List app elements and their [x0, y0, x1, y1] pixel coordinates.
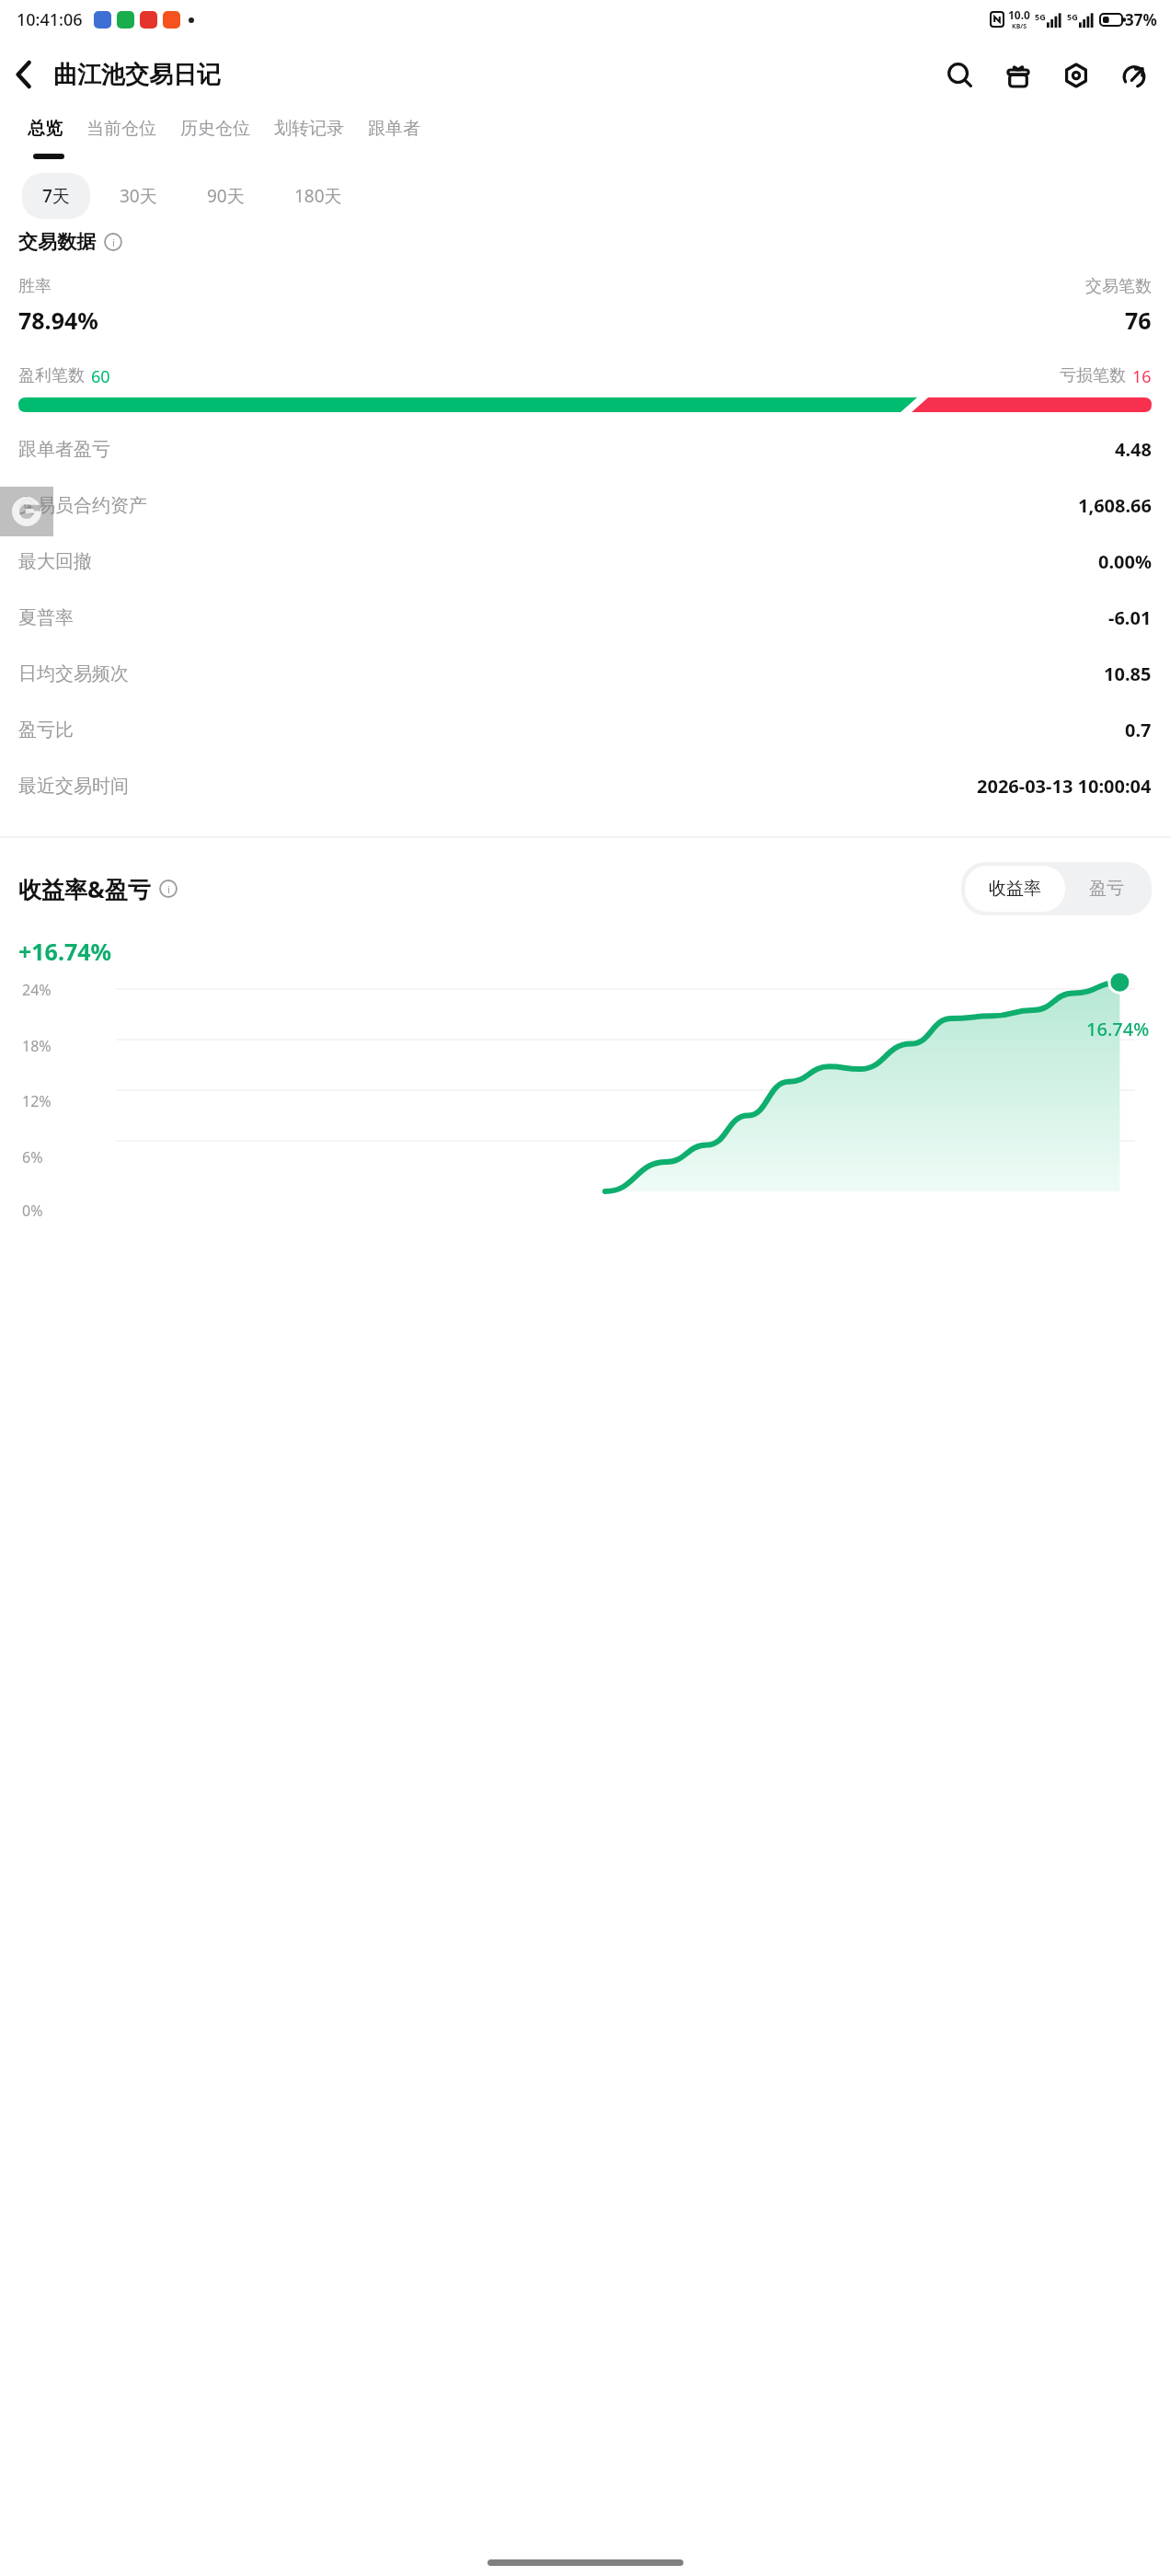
- staticText: 78.94%: [18, 305, 98, 336]
- staticText: 收益率: [989, 878, 1041, 900]
- staticText: 12%: [22, 1091, 52, 1110]
- staticText: 最大回撤: [18, 550, 92, 573]
- button[interactable]: 划转记录: [265, 110, 353, 147]
- staticText: 曲江池交易日记: [53, 60, 221, 90]
- button[interactable]: 历史仓位: [171, 110, 259, 147]
- staticText: 盈利笔数: [18, 365, 85, 386]
- staticText: 90天: [207, 184, 245, 208]
- staticText: 盈亏: [1089, 878, 1124, 900]
- staticText: 盈亏比: [18, 719, 74, 742]
- staticText: 16: [1132, 365, 1152, 388]
- staticText: 0.00%: [1098, 549, 1152, 574]
- staticText: 24%: [22, 980, 52, 998]
- staticText: 亏损笔数: [1060, 365, 1126, 386]
- button[interactable]: 当前仓位: [77, 110, 166, 147]
- staticText: 10:41:06: [17, 8, 83, 31]
- staticText: 6%: [22, 1147, 43, 1166]
- staticText: 交易数据: [18, 230, 96, 254]
- staticText: 历史仓位: [180, 118, 250, 140]
- staticText: 7天: [42, 184, 70, 208]
- button[interactable]: Gift: [989, 46, 1047, 104]
- staticText: 1,608.66: [1078, 493, 1152, 518]
- staticText: 37%: [1125, 9, 1157, 30]
- button[interactable]: Search: [931, 46, 989, 104]
- button[interactable]: Info: [103, 232, 123, 252]
- button[interactable]: Settings: [1047, 46, 1105, 104]
- staticText: 最近交易时间: [18, 775, 129, 798]
- button[interactable]: Back: [0, 51, 48, 98]
- staticText: 30天: [120, 184, 157, 208]
- staticText: 0%: [22, 1201, 43, 1219]
- button[interactable]: 30天: [99, 173, 178, 219]
- staticText: 5G: [1067, 11, 1078, 22]
- staticText: KB/S: [1012, 22, 1027, 31]
- staticText: +16.74%: [18, 936, 112, 967]
- staticText: 跟单者盈亏: [18, 438, 110, 461]
- staticText: 当前仓位: [86, 118, 156, 140]
- staticText: 10.85: [1104, 661, 1152, 686]
- staticText: 交易员合约资产: [18, 494, 147, 517]
- staticText: -6.01: [1108, 605, 1152, 630]
- staticText: 2026-03-13 10:00:04: [977, 774, 1152, 799]
- staticText: 跟单者: [368, 118, 420, 140]
- staticText: 夏普率: [18, 606, 74, 629]
- staticText: 10.0: [1008, 7, 1030, 22]
- button[interactable]: 90天: [187, 173, 265, 219]
- button[interactable]: 跟单者: [359, 110, 430, 147]
- staticText: 胜率: [18, 276, 52, 297]
- staticText: 60: [91, 365, 110, 388]
- button[interactable]: 总览: [18, 110, 72, 147]
- button[interactable]: 盈亏: [1065, 866, 1148, 912]
- button[interactable]: 收益率: [965, 866, 1065, 912]
- staticText: 16.74%: [1086, 1017, 1150, 1041]
- staticText: 18%: [22, 1036, 52, 1054]
- staticText: 收益率&盈亏: [18, 873, 151, 904]
- button[interactable]: Info: [158, 879, 178, 899]
- staticText: 180天: [294, 184, 342, 208]
- staticText: 76: [1125, 305, 1152, 336]
- staticText: 4.48: [1115, 437, 1152, 462]
- staticText: i: [112, 236, 115, 249]
- staticText: 日均交易频次: [18, 662, 129, 685]
- staticText: 5G: [1035, 11, 1046, 22]
- staticText: 划转记录: [274, 118, 344, 140]
- staticText: i: [167, 882, 170, 896]
- staticText: 总览: [28, 118, 63, 140]
- staticText: 0.7: [1125, 718, 1152, 742]
- button[interactable]: Share: [1105, 46, 1163, 104]
- staticText: 交易笔数: [1085, 276, 1152, 297]
- button[interactable]: 180天: [274, 173, 362, 219]
- button[interactable]: 7天: [22, 173, 90, 219]
